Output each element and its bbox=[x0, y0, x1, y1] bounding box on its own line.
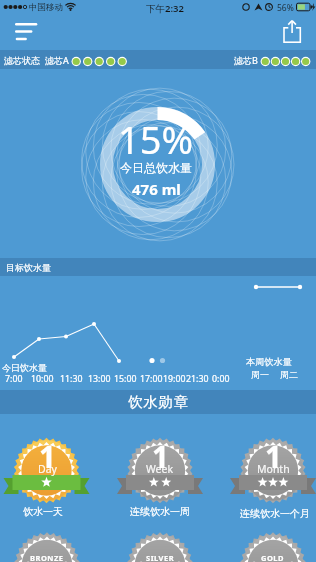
staticText: 中国移动 bbox=[29, 2, 63, 13]
staticText: 周二 bbox=[280, 369, 298, 380]
staticText: 饮水一天 bbox=[23, 505, 63, 518]
staticText: 13:00 bbox=[88, 373, 111, 385]
staticText: SILVER bbox=[146, 553, 175, 562]
staticText: 饮水勋章 bbox=[128, 393, 190, 411]
staticText: 连续饮水一个月 bbox=[240, 507, 310, 520]
button[interactable] bbox=[8, 437, 88, 522]
staticText: 15:00 bbox=[114, 373, 137, 385]
button[interactable] bbox=[233, 437, 313, 522]
staticText: 周一 bbox=[251, 369, 269, 380]
staticText: 1 bbox=[265, 436, 282, 476]
button[interactable] bbox=[120, 437, 200, 522]
staticText: 0:00 bbox=[212, 373, 230, 385]
staticText: 本周饮水量 bbox=[246, 356, 292, 368]
button[interactable] bbox=[0, 258, 316, 276]
staticText: 滤芯A bbox=[45, 54, 69, 66]
staticText: Day bbox=[38, 462, 57, 476]
staticText: 滤芯状态 bbox=[4, 55, 40, 66]
button[interactable] bbox=[278, 16, 308, 48]
staticText: 1 bbox=[152, 436, 169, 476]
staticText: 连续饮水一周 bbox=[130, 505, 190, 518]
staticText: 21:30 bbox=[186, 373, 209, 385]
staticText: 7:00 bbox=[5, 373, 23, 385]
staticText: 17:00 bbox=[140, 373, 163, 385]
button[interactable] bbox=[0, 50, 316, 69]
staticText: 下午2:32 bbox=[146, 2, 184, 15]
staticText: Week bbox=[146, 462, 174, 476]
staticText: Month bbox=[257, 462, 290, 476]
staticText: 10:00 bbox=[31, 373, 54, 385]
button[interactable] bbox=[8, 18, 44, 48]
staticText: 1 bbox=[39, 436, 56, 476]
staticText: 目标饮水量 bbox=[6, 262, 51, 273]
staticText: 11:30 bbox=[60, 373, 83, 385]
staticText: 19:00 bbox=[163, 373, 186, 385]
button[interactable] bbox=[100, 107, 215, 222]
staticText: 476 ml bbox=[132, 179, 181, 199]
staticText: 今日饮水量 bbox=[2, 362, 47, 373]
staticText: 15% bbox=[118, 113, 194, 163]
staticText: 今日总饮水量 bbox=[120, 160, 192, 175]
staticText: BRONZE bbox=[30, 553, 64, 562]
staticText: 滤芯B bbox=[234, 54, 258, 66]
staticText: GOLD bbox=[261, 553, 285, 562]
staticText: 56% bbox=[277, 2, 294, 14]
